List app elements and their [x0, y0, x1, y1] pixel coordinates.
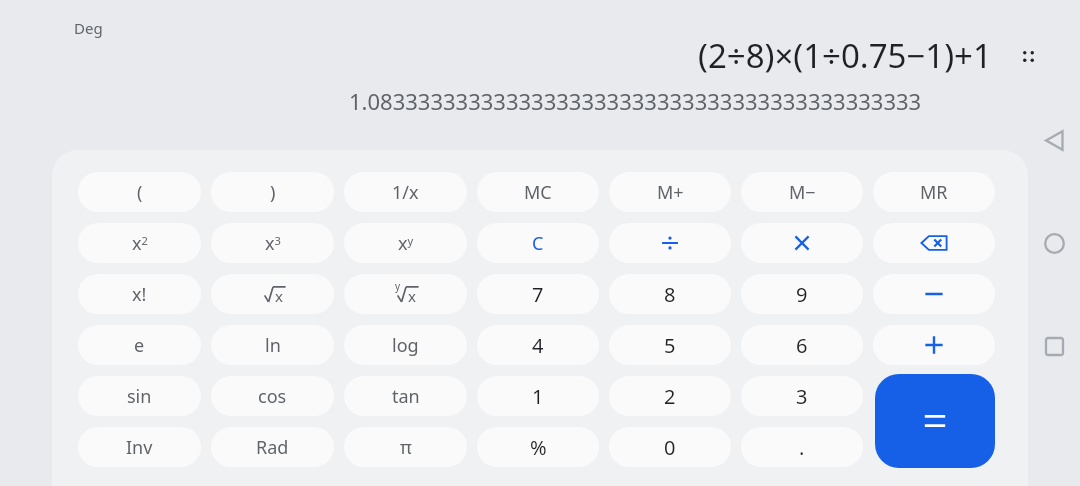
staticText: x [275, 286, 283, 306]
staticText: Deg [74, 18, 103, 38]
staticText: 8 [664, 281, 676, 308]
button[interactable]: 1/x [344, 172, 467, 212]
staticText: tan [392, 384, 420, 409]
staticText: sin [127, 384, 152, 409]
button[interactable]: Recents [1033, 325, 1075, 367]
button[interactable]: M+ [609, 172, 731, 212]
button[interactable]: MC [477, 172, 599, 212]
button[interactable]: ) [211, 172, 334, 212]
button[interactable]: . [741, 427, 863, 467]
button[interactable]: MR [873, 172, 995, 212]
staticText: 0 [664, 434, 676, 461]
staticText: Rad [256, 435, 289, 460]
staticText: MC [524, 180, 552, 205]
button[interactable]: 5 [609, 325, 731, 365]
button[interactable]: sin [78, 376, 201, 416]
staticText: x2 [132, 231, 148, 256]
staticText: 5 [664, 332, 676, 359]
staticText: M+ [657, 180, 684, 205]
staticText: y [395, 279, 401, 293]
button[interactable]: 1 [477, 376, 599, 416]
staticText: C [532, 231, 544, 256]
staticText: x! [132, 282, 147, 307]
button[interactable]: ( [78, 172, 201, 212]
staticText: M− [789, 180, 816, 205]
staticText: 9 [796, 281, 808, 308]
button[interactable]: 7 [477, 274, 599, 314]
staticText: x [408, 286, 416, 306]
button[interactable]: Equals [875, 374, 995, 468]
button[interactable]: tan [344, 376, 467, 416]
button[interactable]: Plus [873, 325, 995, 365]
button[interactable]: History [1014, 42, 1042, 70]
button[interactable]: Home [1033, 222, 1075, 264]
staticText: xy [398, 231, 414, 256]
staticText: 3 [796, 383, 808, 410]
staticText: % [530, 434, 547, 461]
staticText: π [400, 435, 412, 460]
staticText: (2÷8)×(1÷0.75−1)+1 [698, 33, 992, 78]
button[interactable]: xy [344, 223, 467, 263]
staticText: e [134, 333, 145, 358]
button[interactable]: x3 [211, 223, 334, 263]
staticText: ) [270, 180, 276, 205]
button[interactable]: M− [741, 172, 863, 212]
button[interactable]: NthRoot [344, 274, 467, 314]
button[interactable]: Back [1033, 119, 1075, 161]
button[interactable]: Rad [211, 427, 334, 467]
button[interactable]: log [344, 325, 467, 365]
button[interactable]: % [477, 427, 599, 467]
staticText: 6 [796, 332, 808, 359]
staticText: 1.08333333333333333333333333333333333333… [349, 86, 922, 116]
button[interactable]: 8 [609, 274, 731, 314]
button[interactable]: Inv [78, 427, 201, 467]
button[interactable]: cos [211, 376, 334, 416]
staticText: 1 [532, 383, 544, 410]
staticText: cos [258, 384, 287, 409]
button[interactable]: 0 [609, 427, 731, 467]
button[interactable]: Minus [873, 274, 995, 314]
button[interactable]: SquareRoot [211, 274, 334, 314]
button[interactable]: Divide [609, 223, 731, 263]
button[interactable]: 6 [741, 325, 863, 365]
staticText: x3 [265, 231, 281, 256]
staticText: 4 [532, 332, 544, 359]
button[interactable]: Backspace [873, 223, 995, 263]
staticText: . [799, 434, 805, 461]
staticText: MR [920, 180, 948, 205]
button[interactable]: x2 [78, 223, 201, 263]
button[interactable]: 9 [741, 274, 863, 314]
button[interactable]: 4 [477, 325, 599, 365]
staticText: log [392, 333, 419, 358]
staticText: ( [137, 180, 143, 205]
button[interactable]: C [477, 223, 599, 263]
button[interactable]: 3 [741, 376, 863, 416]
button[interactable]: 2 [609, 376, 731, 416]
staticText: Inv [126, 435, 153, 460]
staticText: 7 [532, 281, 544, 308]
button[interactable]: x! [78, 274, 201, 314]
button[interactable]: Multiply [741, 223, 863, 263]
staticText: 1/x [392, 180, 419, 205]
button[interactable]: e [78, 325, 201, 365]
staticText: 2 [664, 383, 676, 410]
button[interactable]: ln [211, 325, 334, 365]
button[interactable]: π [344, 427, 467, 467]
staticText: ln [265, 333, 281, 358]
